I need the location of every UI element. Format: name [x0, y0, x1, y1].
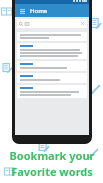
button[interactable]	[17, 43, 87, 59]
button[interactable]	[17, 32, 87, 41]
staticText: Favorite words	[11, 164, 93, 179]
button[interactable]: Clear search	[80, 21, 85, 26]
button[interactable]	[17, 73, 87, 83]
staticText: Home	[30, 7, 48, 15]
other: Search	[19, 22, 23, 26]
button[interactable]: Open navigation menu	[18, 7, 26, 15]
staticText: Bookmark your	[9, 148, 95, 163]
button[interactable]	[17, 85, 87, 98]
button[interactable]	[17, 61, 87, 71]
button[interactable]: Search	[17, 19, 87, 28]
